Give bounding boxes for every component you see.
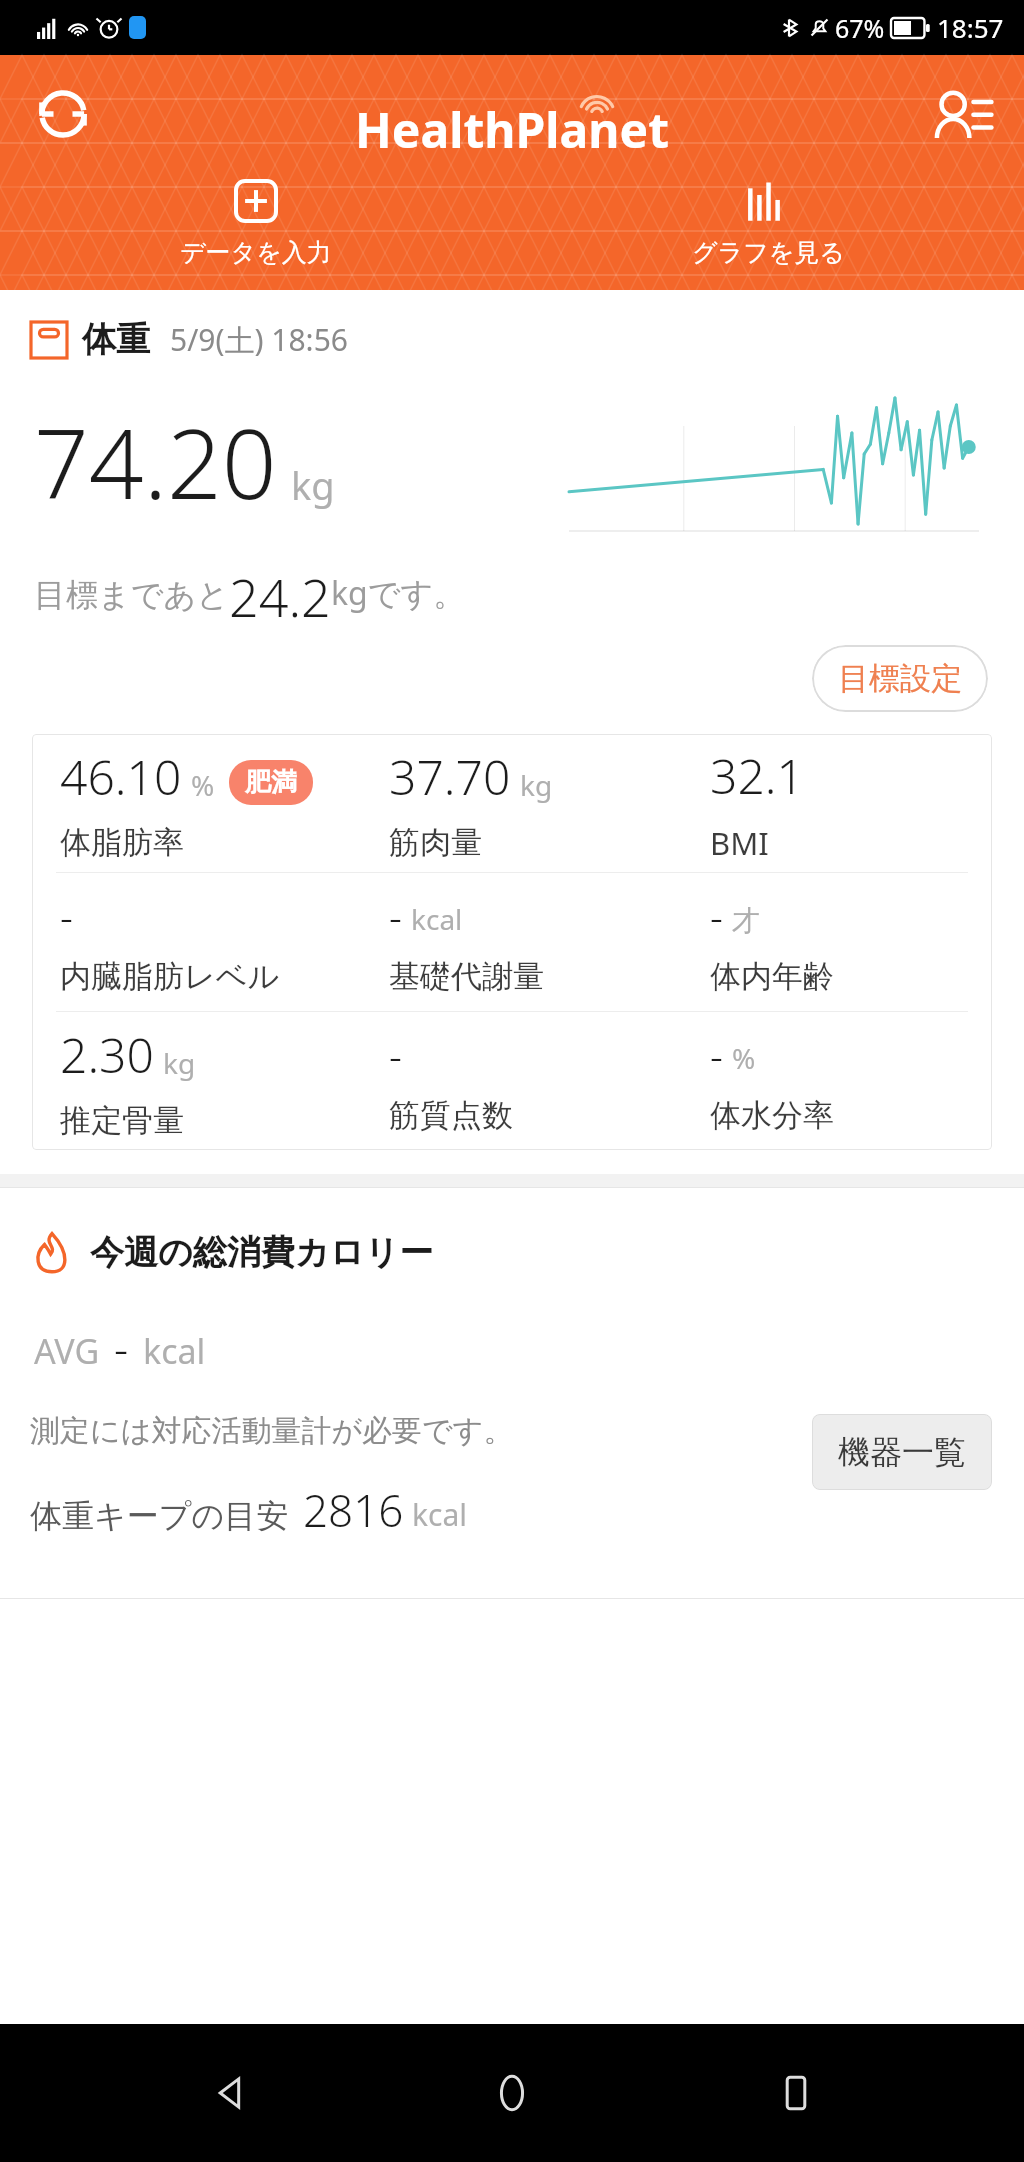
staticText: -	[389, 889, 402, 943]
staticText: 筋質点数	[389, 1096, 513, 1135]
staticText: 24.2	[229, 561, 331, 621]
staticText: kcal	[143, 1328, 206, 1374]
staticText: 基礎代謝量	[389, 957, 544, 996]
staticText: 体水分率	[710, 1096, 834, 1135]
staticText: -	[60, 889, 73, 943]
staticText: グラフを見る	[692, 237, 845, 268]
staticText: 肥満	[245, 766, 297, 799]
staticText: 32.1	[710, 743, 804, 808]
button[interactable]: Account	[926, 79, 1000, 153]
staticText: 目標まであと	[34, 575, 229, 615]
staticText: 18:57	[937, 10, 1004, 45]
staticText: %	[191, 766, 215, 804]
button[interactable]: Home	[457, 2038, 567, 2148]
staticText: データを入力	[180, 237, 332, 268]
button[interactable]: 目標設定	[812, 645, 988, 712]
staticText: %	[732, 1039, 756, 1077]
staticText: 目標設定	[838, 659, 962, 698]
staticText: 74.20	[34, 396, 277, 527]
button[interactable]: Back	[174, 2038, 284, 2148]
staticText: 体重	[82, 318, 150, 361]
staticText: kgです。	[331, 571, 466, 615]
staticText: kg	[520, 766, 553, 804]
staticText: kg	[291, 459, 335, 511]
button[interactable]: データを入力	[0, 169, 512, 272]
staticText: 46.10	[60, 744, 182, 809]
staticText: 体重キープの目安	[30, 1496, 289, 1536]
staticText: 体内年齢	[710, 957, 834, 996]
staticText: -	[114, 1318, 129, 1378]
staticText: 37.70	[389, 744, 511, 809]
staticText: 内臓脂肪レベル	[60, 957, 280, 996]
staticText: 67%	[835, 11, 885, 45]
staticText: kcal	[412, 1494, 467, 1535]
staticText: 2816	[303, 1480, 404, 1540]
staticText: 5/9(土) 18:56	[170, 319, 348, 360]
button[interactable]: Recents	[741, 2038, 851, 2148]
staticText: 2.30	[60, 1022, 154, 1087]
staticText: 筋肉量	[389, 823, 482, 862]
staticText: -	[710, 1028, 723, 1082]
staticText: BMI	[710, 822, 769, 864]
staticText: 今週の総消費カロリー	[90, 1231, 434, 1274]
staticText: -	[389, 1028, 402, 1082]
staticText: 推定骨量	[60, 1101, 184, 1140]
staticText: -	[710, 889, 723, 943]
staticText: 才	[732, 903, 760, 938]
button[interactable]: Sync	[22, 73, 104, 155]
staticText: 測定には対応活動量計が必要です。	[30, 1412, 514, 1450]
button[interactable]: 機器一覧	[812, 1414, 992, 1490]
button[interactable]: グラフを見る	[512, 169, 1024, 272]
staticText: kg	[163, 1044, 196, 1082]
staticText: kcal	[411, 900, 463, 938]
staticText: HealthPlanet	[355, 97, 670, 162]
staticText: AVG	[34, 1328, 100, 1374]
staticText: 機器一覧	[838, 1432, 966, 1472]
staticText: 体脂肪率	[60, 823, 184, 862]
